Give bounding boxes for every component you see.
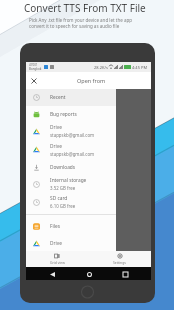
button[interactable]: Internal storage (26, 175, 151, 193)
staticText: Internal storage (50, 177, 87, 184)
staticText: Pick Any .txt file from your device and … (29, 17, 133, 29)
staticText: Files (50, 223, 60, 230)
staticText: Drive (50, 240, 62, 247)
staticText: SD card (50, 195, 68, 202)
staticText: 28.2K/s (94, 65, 108, 70)
button[interactable]: Files (26, 218, 151, 235)
button[interactable]: Close (26, 72, 41, 89)
staticText: 6.10 GB free (50, 203, 76, 209)
button[interactable]: Downloads (26, 159, 151, 175)
button[interactable]: Drive (26, 140, 151, 159)
staticText: Grid view (50, 260, 65, 265)
staticText: Drive (50, 143, 62, 150)
button[interactable]: Settings (88, 251, 151, 267)
staticText: Drive (50, 124, 62, 131)
staticText: 4:45 PM (132, 65, 148, 70)
staticText: 47001 Bangkok (29, 63, 42, 71)
staticText: Open from (77, 77, 106, 84)
button[interactable]: Drive (26, 235, 151, 251)
staticText: Settings (113, 260, 126, 265)
button[interactable]: Recents (115, 268, 135, 280)
staticText: Recent (50, 94, 66, 101)
staticText: Bug reports (50, 111, 77, 118)
staticText: 3.52 GB free (50, 185, 76, 191)
button[interactable]: Home (79, 268, 99, 280)
button[interactable]: Bug reports (26, 106, 151, 122)
staticText: stappskb@gmail.com (50, 151, 95, 157)
staticText: Convert TTS From TXT File (24, 1, 146, 15)
button[interactable]: Drive (26, 122, 151, 140)
button[interactable]: SD card (26, 193, 151, 211)
button[interactable]: Recent (26, 89, 151, 106)
staticText: Downloads (50, 164, 76, 171)
button[interactable]: Grid view (26, 251, 88, 267)
button[interactable]: Back (42, 268, 62, 280)
staticText: stappskb@gmail.com (50, 132, 95, 138)
